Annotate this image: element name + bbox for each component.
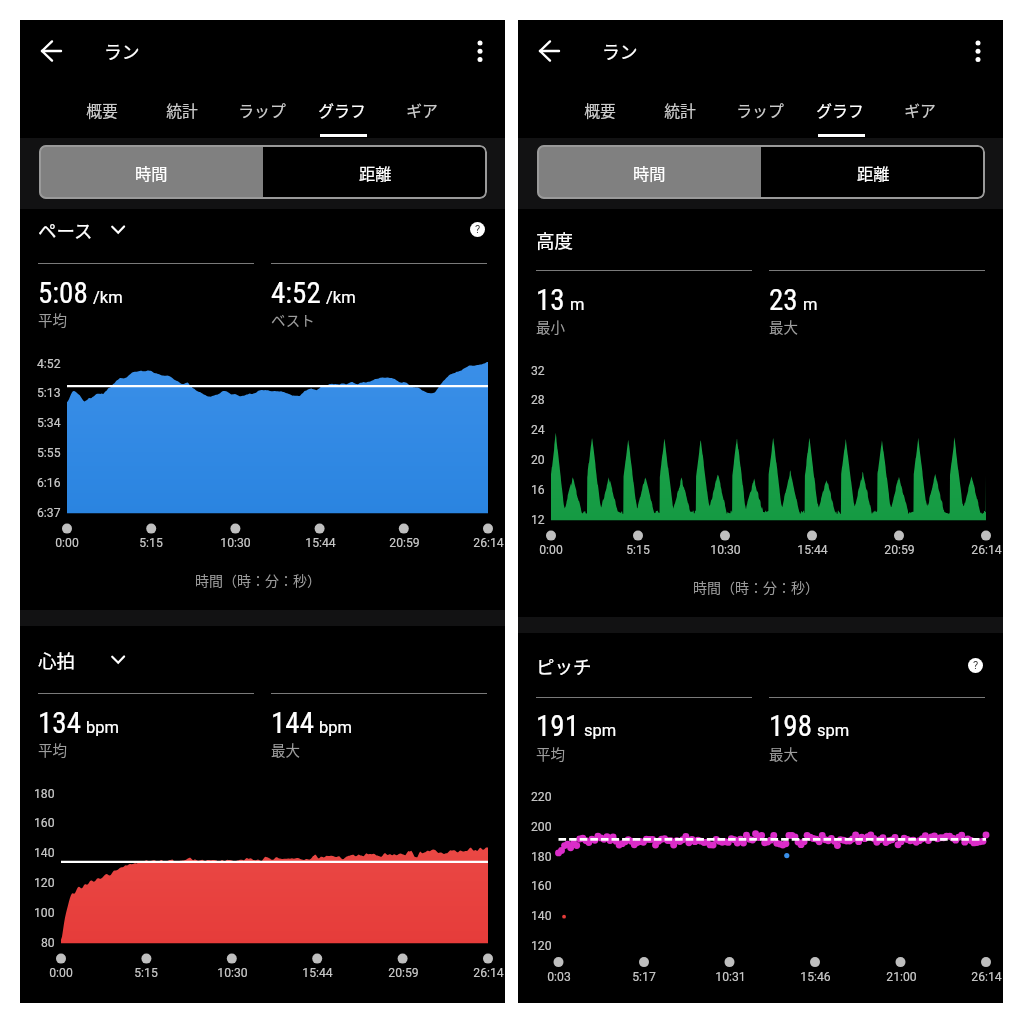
staticText: ピッチ: [536, 653, 592, 680]
button[interactable]: 距離: [761, 145, 985, 199]
staticText: 0:00: [49, 966, 73, 980]
staticText: /km: [326, 288, 356, 307]
button[interactable]: Help: [968, 658, 983, 673]
button[interactable]: 統計: [142, 86, 222, 138]
button[interactable]: 高度: [518, 216, 958, 264]
staticText: 160: [34, 816, 55, 830]
staticText: 24: [531, 423, 545, 437]
staticText: 時間: [135, 161, 168, 184]
staticText: 5:15: [134, 966, 158, 980]
staticText: 198: [769, 709, 812, 743]
staticText: 10:30: [217, 966, 248, 980]
staticText: ベスト: [271, 309, 315, 330]
staticText: 10:31: [715, 970, 746, 984]
button[interactable]: More options: [958, 31, 998, 71]
staticText: 180: [34, 787, 55, 801]
staticText: 26:14: [473, 536, 504, 550]
staticText: 28: [531, 393, 545, 407]
staticText: 0:00: [539, 543, 563, 557]
staticText: /km: [93, 288, 123, 307]
button[interactable]: ラップ: [720, 86, 800, 138]
staticText: 6:37: [37, 506, 61, 520]
button[interactable]: グラフ: [800, 86, 880, 138]
staticText: bpm: [86, 718, 119, 737]
staticText: 距離: [857, 161, 890, 184]
staticText: 120: [531, 939, 552, 953]
staticText: 20:59: [884, 543, 915, 557]
staticText: 100: [34, 906, 55, 920]
staticText: 概要: [86, 99, 118, 122]
staticText: 5:17: [632, 970, 656, 984]
staticText: 最大: [769, 743, 798, 764]
staticText: ラン: [602, 38, 638, 64]
staticText: 時間（時：分：秒）: [195, 570, 321, 590]
button[interactable]: ラップ: [222, 86, 302, 138]
button[interactable]: グラフ: [302, 86, 382, 138]
staticText: 距離: [359, 161, 392, 184]
staticText: 140: [531, 909, 552, 923]
staticText: spm: [817, 721, 850, 740]
button[interactable]: ギア: [382, 86, 462, 138]
staticText: ラップ: [736, 99, 784, 122]
staticText: 10:30: [710, 543, 741, 557]
button[interactable]: 時間: [537, 145, 761, 199]
staticText: 統計: [664, 99, 696, 122]
staticText: 160: [531, 879, 552, 893]
staticText: 0:00: [55, 536, 79, 550]
staticText: 10:30: [220, 536, 251, 550]
button[interactable]: More options: [460, 31, 500, 71]
staticText: 最小: [536, 316, 565, 337]
staticText: グラフ: [318, 99, 366, 122]
staticText: bpm: [319, 718, 352, 737]
staticText: spm: [584, 721, 617, 740]
staticText: 134: [38, 706, 81, 740]
staticText: 20:59: [389, 536, 420, 550]
staticText: 15:44: [302, 966, 333, 980]
staticText: 概要: [584, 99, 616, 122]
staticText: 平均: [38, 309, 67, 330]
staticText: 15:44: [797, 543, 828, 557]
staticText: 5:15: [626, 543, 650, 557]
button[interactable]: 概要: [560, 86, 640, 138]
staticText: 26:14: [971, 543, 1002, 557]
staticText: 0:03: [547, 970, 571, 984]
button[interactable]: Help: [470, 222, 485, 237]
button[interactable]: 時間: [39, 145, 263, 199]
button[interactable]: Expand 心拍: [106, 652, 130, 676]
staticText: ラン: [104, 38, 140, 64]
staticText: 20: [531, 453, 545, 467]
staticText: 4:52: [37, 357, 61, 371]
staticText: 最大: [769, 316, 798, 337]
button[interactable]: ギア: [880, 86, 960, 138]
staticText: 16: [531, 483, 545, 497]
staticText: 統計: [166, 99, 198, 122]
staticText: グラフ: [816, 99, 864, 122]
staticText: ギア: [904, 99, 936, 122]
button[interactable]: Expand ペース: [106, 222, 130, 246]
staticText: 80: [41, 936, 55, 950]
staticText: 191: [536, 709, 579, 743]
staticText: 5:15: [139, 536, 163, 550]
staticText: 13: [536, 283, 565, 317]
button[interactable]: 距離: [263, 145, 487, 199]
staticText: 220: [531, 790, 552, 804]
staticText: ?: [475, 223, 481, 236]
button[interactable]: ペース: [20, 209, 460, 254]
button[interactable]: 概要: [62, 86, 142, 138]
button[interactable]: 統計: [640, 86, 720, 138]
staticText: 5:55: [37, 446, 61, 460]
staticText: 21:00: [886, 970, 917, 984]
staticText: ギア: [406, 99, 438, 122]
staticText: 心拍: [38, 647, 76, 674]
button[interactable]: Back: [529, 31, 569, 71]
staticText: 15:44: [305, 536, 336, 550]
staticText: 144: [271, 706, 314, 740]
staticText: 最大: [271, 739, 300, 760]
staticText: 15:46: [800, 970, 831, 984]
staticText: 23: [769, 283, 798, 317]
staticText: m: [803, 295, 818, 314]
button[interactable]: ピッチ: [518, 642, 958, 690]
button[interactable]: 心拍: [20, 636, 460, 684]
button[interactable]: Back: [31, 31, 71, 71]
staticText: 5:08: [38, 276, 88, 310]
